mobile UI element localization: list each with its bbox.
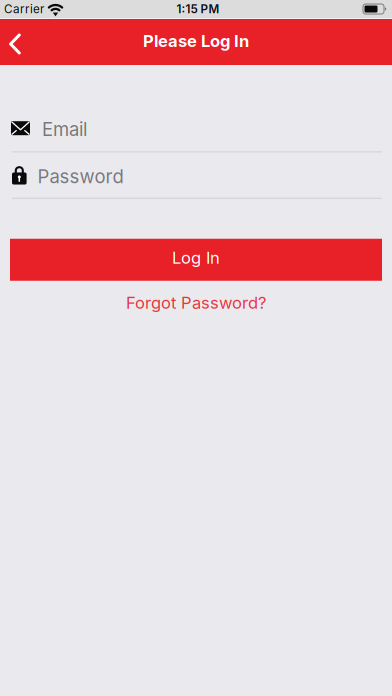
staticText: Carrier [4,2,44,16]
staticText: 1:15 PM [176,2,219,16]
staticText: Email [42,118,87,140]
button[interactable]: Log In [10,239,382,281]
button[interactable]: Password [0,165,392,199]
button[interactable]: Email [0,118,392,152]
staticText: Forgot Password? [126,293,266,313]
button[interactable]: Back [0,19,33,65]
staticText: Password [38,165,124,188]
staticText: Please Log In [143,31,249,51]
staticText: Log In [172,248,220,268]
button[interactable]: Forgot Password? [126,293,266,313]
